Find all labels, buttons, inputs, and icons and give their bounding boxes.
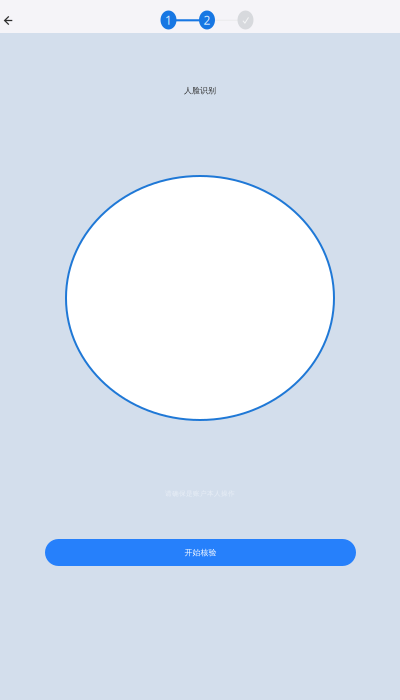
button[interactable]: 开始核验 — [45, 539, 356, 566]
staticText: 开始核验 — [184, 548, 216, 557]
staticText: 请确保是账户本人操作 — [165, 489, 235, 498]
staticText: 1 — [165, 12, 172, 28]
staticText: 人脸识别 — [184, 86, 216, 95]
staticText: 2 — [203, 12, 210, 28]
button[interactable]: Back — [0, 0, 30, 33]
